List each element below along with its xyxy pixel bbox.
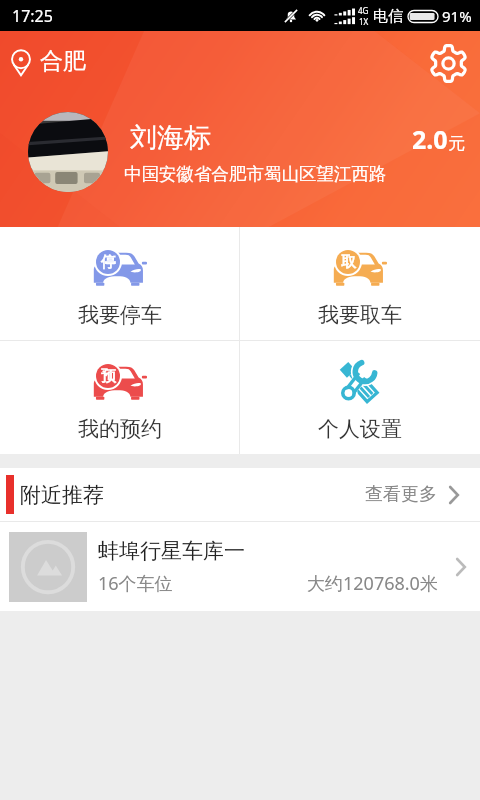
staticText: 合肥	[40, 47, 86, 76]
button[interactable]: 预	[0, 341, 239, 454]
staticText: 17:25	[12, 5, 53, 27]
staticText: 取	[341, 253, 356, 272]
staticText: 蚌埠行星车库一	[98, 538, 245, 564]
button[interactable]: 停	[0, 227, 239, 340]
staticText: 我要停车	[78, 302, 162, 328]
button[interactable]: 个人设置	[240, 341, 480, 454]
staticText: 我要取车	[318, 302, 402, 328]
staticText: 查看更多	[365, 483, 437, 506]
staticText: 4G	[358, 5, 369, 16]
staticText: 1X	[359, 16, 369, 27]
staticText: 我的预约	[78, 416, 162, 442]
staticText: 91%	[442, 6, 472, 26]
button[interactable]: Settings	[418, 33, 478, 93]
staticText: 刘海标	[130, 121, 211, 155]
button[interactable]: 附近推荐	[0, 468, 480, 521]
staticText: 个人设置	[318, 416, 402, 442]
staticText: 16个车位	[98, 571, 173, 596]
button[interactable]: 取	[240, 227, 480, 340]
staticText: 附近推荐	[20, 482, 104, 508]
staticText: 元	[448, 133, 465, 154]
staticText: 停	[101, 253, 116, 272]
staticText: 电信	[373, 7, 403, 26]
button[interactable]: 蚌埠行星车库一	[0, 522, 480, 611]
button[interactable]: 合肥	[0, 44, 96, 81]
staticText: 大约120768.0米	[307, 571, 438, 596]
staticText: 2.0	[412, 122, 448, 156]
staticText: 中国安徽省合肥市蜀山区望江西路	[124, 163, 387, 185]
staticText: 预	[101, 367, 116, 386]
